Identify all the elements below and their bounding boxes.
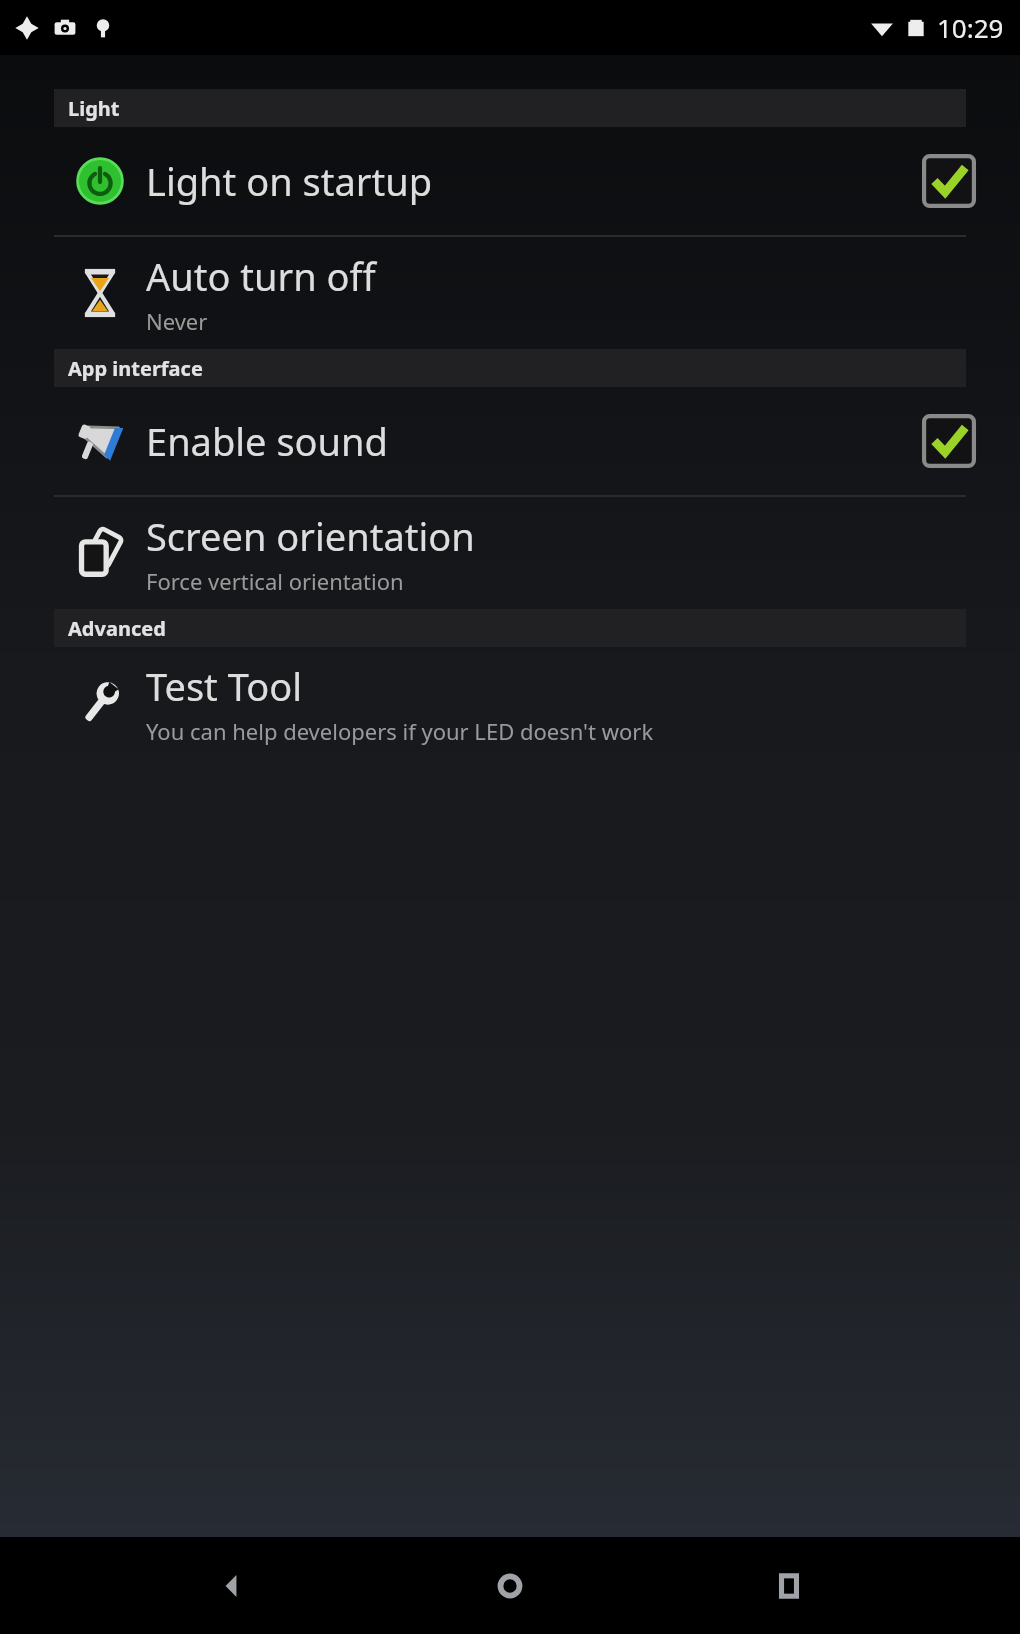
button[interactable]: Test Tool	[0, 647, 1020, 759]
button[interactable]: Home	[462, 1538, 558, 1634]
staticText: Light on startup	[146, 155, 433, 207]
button[interactable]: Light on startup	[0, 127, 1020, 235]
staticText: 10:29	[937, 10, 1004, 45]
button[interactable]: Back	[183, 1538, 279, 1634]
staticText: App interface	[68, 355, 203, 382]
staticText: Light	[68, 95, 120, 122]
button[interactable]: Enable sound	[0, 387, 1020, 495]
button[interactable]: Light on startup	[918, 150, 980, 212]
staticText: Screen orientation	[146, 510, 475, 562]
staticText: Force vertical orientation	[146, 566, 404, 596]
button[interactable]: Auto turn off	[0, 237, 1020, 349]
staticText: Advanced	[68, 615, 166, 642]
button[interactable]: Screen orientation	[0, 497, 1020, 609]
staticText: Test Tool	[146, 660, 302, 712]
button[interactable]: Enable sound	[918, 410, 980, 472]
staticText: Auto turn off	[146, 250, 376, 302]
staticText: You can help developers if your LED does…	[146, 716, 654, 746]
staticText: Enable sound	[146, 415, 388, 467]
button[interactable]: Recent apps	[741, 1538, 837, 1634]
staticText: Never	[146, 306, 208, 336]
